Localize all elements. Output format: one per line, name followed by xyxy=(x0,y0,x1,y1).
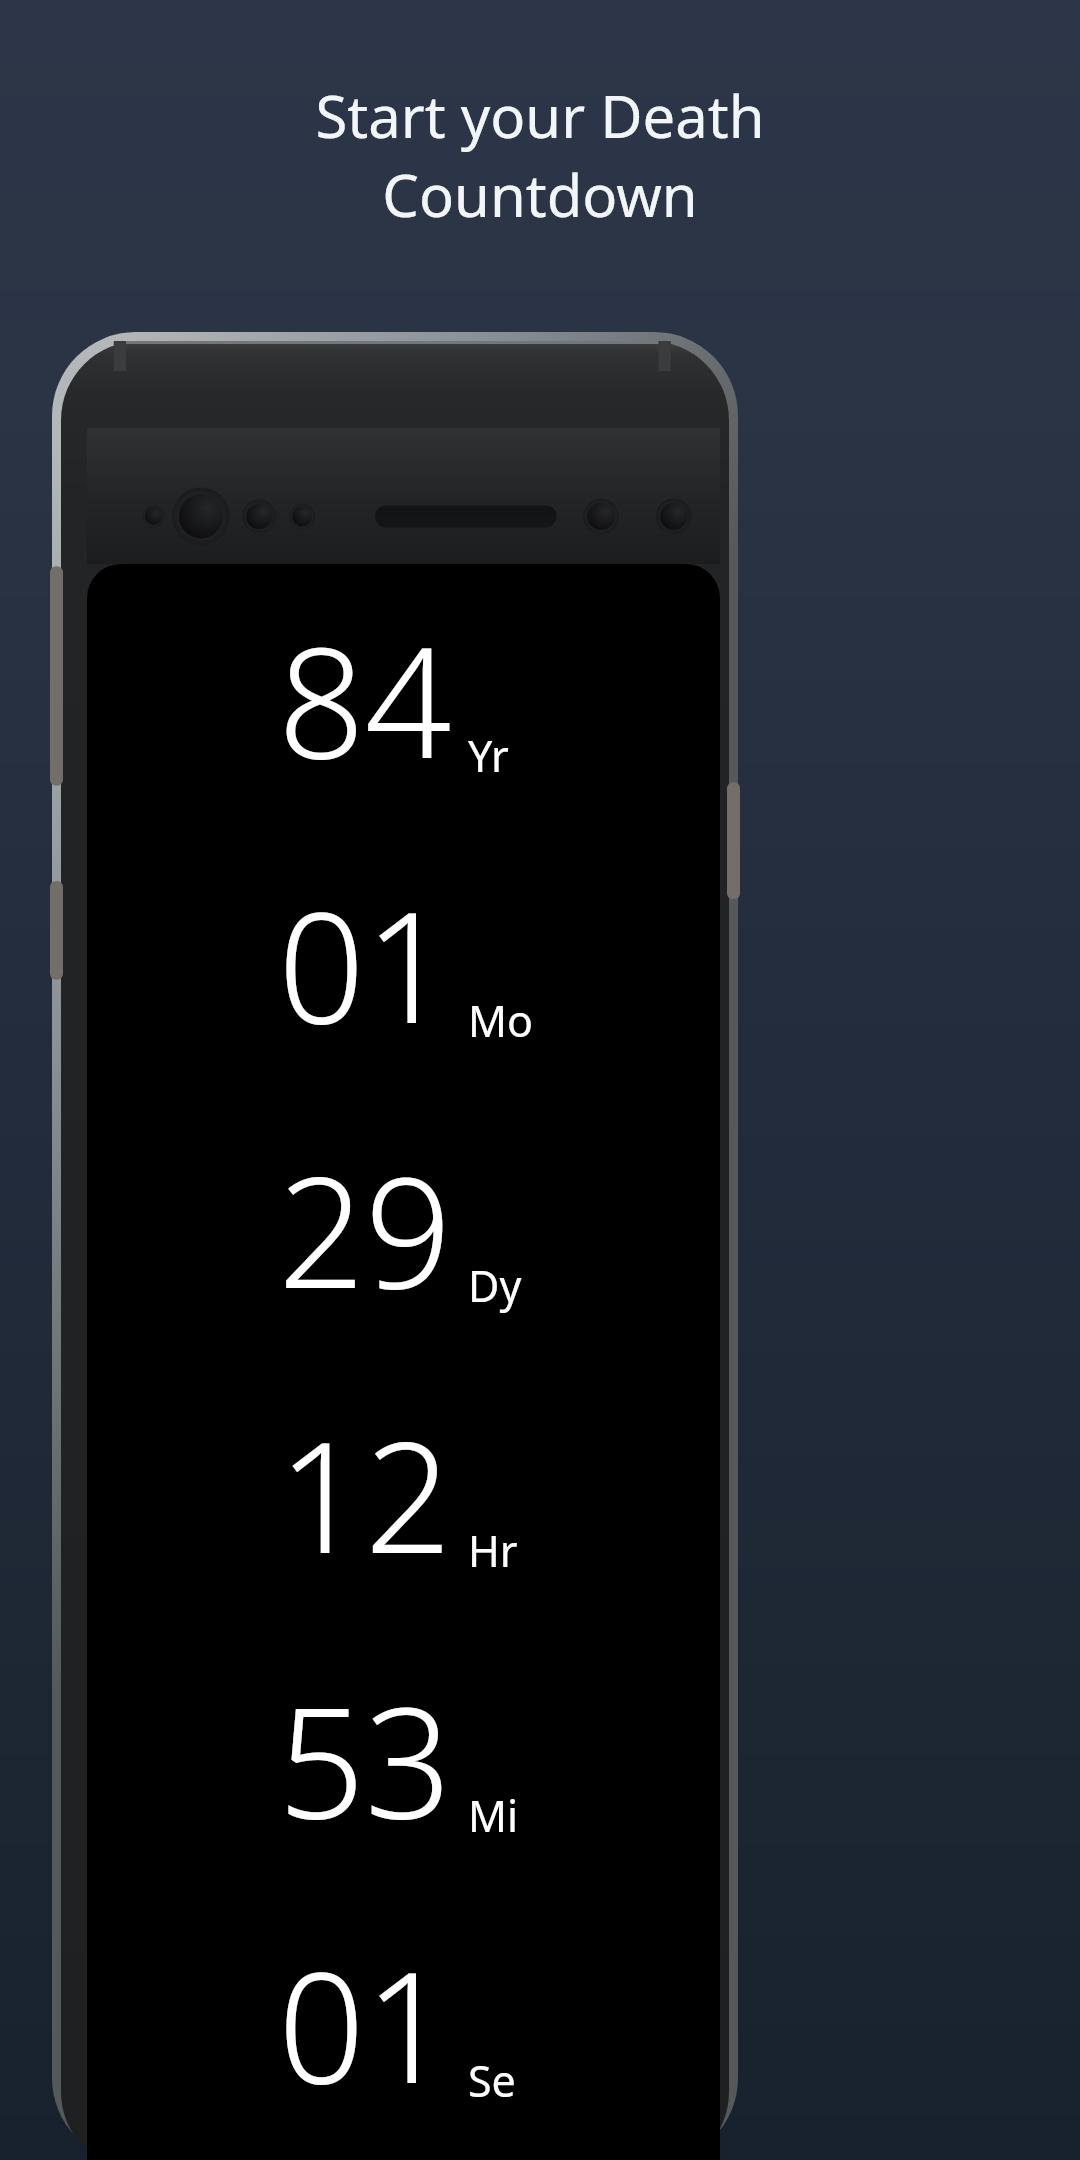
staticText: 01 xyxy=(278,1921,452,2128)
staticText: Yr xyxy=(468,726,509,785)
staticText: Se xyxy=(468,2051,516,2110)
staticText: 01 xyxy=(278,861,452,1068)
staticText: 53 xyxy=(278,1656,452,1863)
staticText: 12 xyxy=(278,1391,452,1598)
staticText: Hr xyxy=(468,1521,518,1580)
staticText: Dy xyxy=(468,1256,522,1315)
staticText: Mo xyxy=(468,991,534,1050)
button[interactable]: Death countdown xyxy=(87,564,720,2128)
staticText: Mi xyxy=(468,1786,519,1845)
staticText: 84 xyxy=(278,596,452,803)
staticText: 29 xyxy=(278,1126,452,1333)
staticText: Start your Death Countdown xyxy=(28,76,1052,234)
